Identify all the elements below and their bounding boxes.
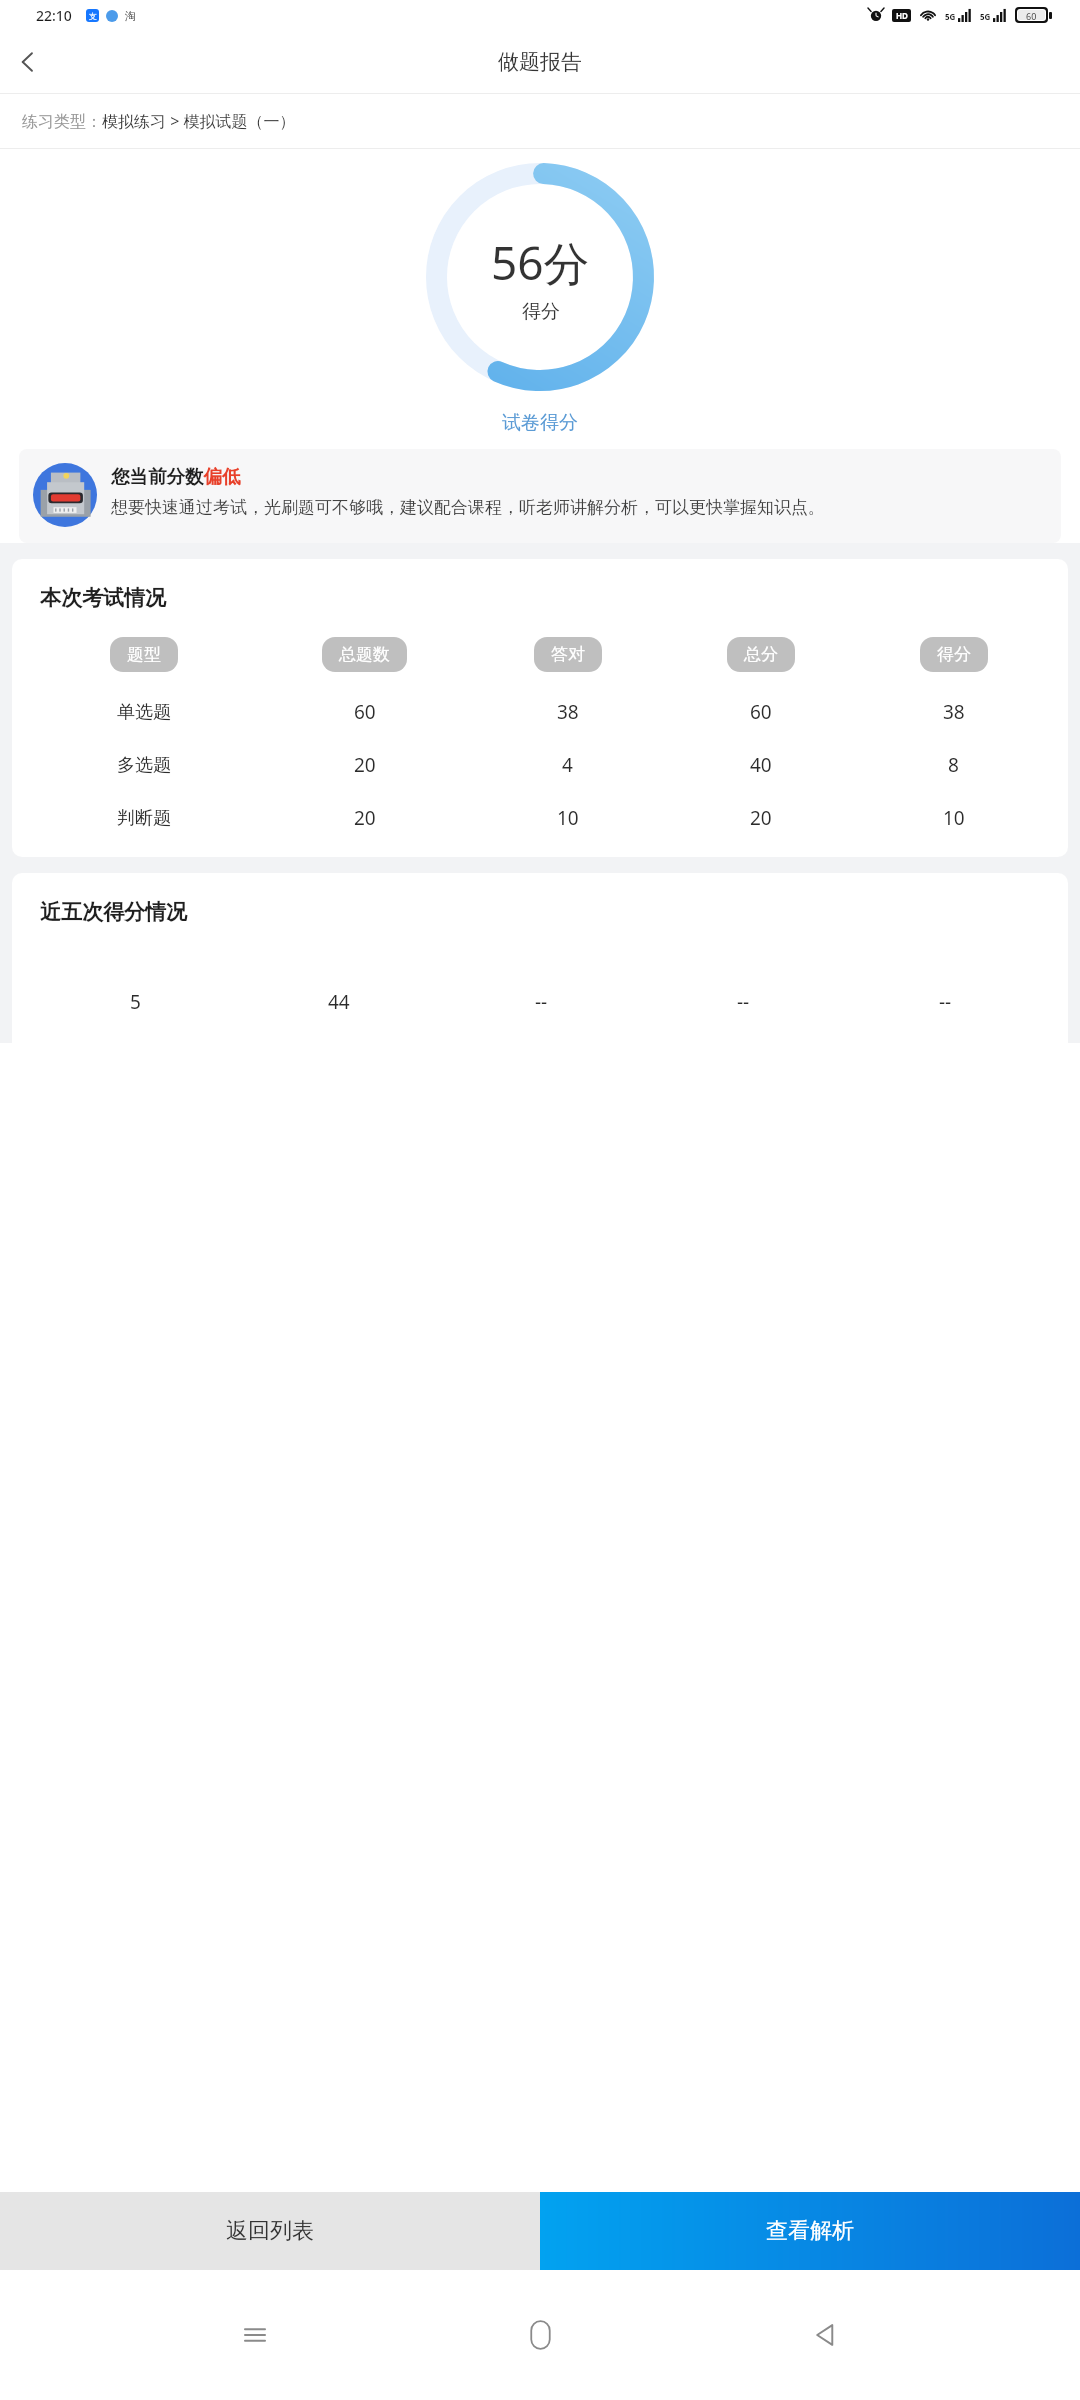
staticText: 22:10: [36, 6, 72, 25]
staticText: 单选题: [117, 701, 171, 724]
staticText: 56分: [491, 231, 590, 294]
staticText: 8: [948, 752, 959, 778]
staticText: 得分: [937, 644, 971, 665]
staticText: 44: [328, 989, 350, 1015]
staticText: 判断题: [117, 807, 171, 830]
button[interactable]: 查看解析: [540, 2192, 1080, 2270]
staticText: 您当前分数偏低: [111, 465, 241, 488]
staticText: 近五次得分情况: [40, 899, 187, 925]
button[interactable]: 最近任务: [225, 2305, 285, 2365]
staticText: 淘: [125, 9, 136, 23]
staticText: 38: [557, 699, 579, 725]
staticText: 支: [89, 11, 97, 21]
staticText: 20: [354, 752, 376, 778]
staticText: 查看解析: [766, 2217, 854, 2245]
staticText: 10: [557, 805, 579, 831]
staticText: 10: [943, 805, 965, 831]
staticText: 想要快速通过考试，光刷题可不够哦，建议配合课程，听老师讲解分析，可以更快掌握知识…: [111, 497, 825, 518]
button[interactable]: 您当前分数偏低: [19, 449, 1061, 543]
staticText: 答对: [551, 644, 585, 665]
staticText: 20: [750, 805, 772, 831]
staticText: 5: [130, 989, 141, 1015]
staticText: 60: [750, 699, 772, 725]
staticText: 得分: [522, 300, 560, 324]
button[interactable]: 返回: [0, 34, 56, 90]
staticText: 返回列表: [226, 2217, 314, 2245]
staticText: 总题数: [339, 644, 390, 665]
button[interactable]: 返回: [795, 2305, 855, 2365]
staticText: --: [939, 989, 952, 1015]
staticText: 20: [354, 805, 376, 831]
staticText: 38: [943, 699, 965, 725]
button[interactable]: 试卷得分: [490, 405, 590, 441]
staticText: 本次考试情况: [40, 585, 166, 611]
staticText: 多选题: [117, 754, 171, 777]
staticText: 做题报告: [498, 49, 582, 75]
staticText: 练习类型：模拟练习 > 模拟试题（一）: [22, 110, 296, 132]
staticText: 试卷得分: [502, 411, 578, 435]
staticText: 题型: [127, 644, 161, 665]
staticText: --: [535, 989, 548, 1015]
button[interactable]: 主屏幕: [510, 2305, 570, 2365]
staticText: 5G: [980, 11, 991, 22]
staticText: 40: [750, 752, 772, 778]
staticText: --: [737, 989, 750, 1015]
staticText: 总分: [744, 644, 778, 665]
staticText: 5G: [945, 11, 956, 22]
staticText: 60: [354, 699, 376, 725]
button[interactable]: 返回列表: [0, 2192, 540, 2270]
staticText: HD: [896, 10, 908, 21]
staticText: 4: [562, 752, 573, 778]
staticText: 60: [1026, 10, 1037, 20]
